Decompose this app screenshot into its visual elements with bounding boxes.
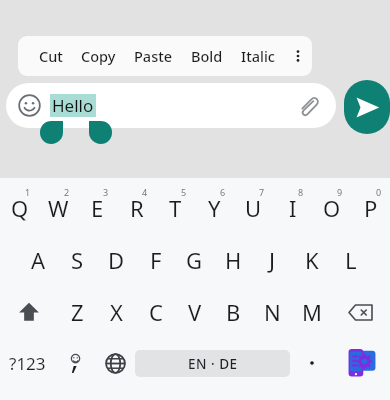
button[interactable]: L <box>331 234 370 286</box>
staticText: Paste <box>134 46 173 66</box>
staticText: L <box>345 245 357 275</box>
staticText: 4 <box>142 186 148 198</box>
staticText: V <box>188 297 202 327</box>
button[interactable]: F <box>136 234 175 286</box>
button[interactable]: Selection start handle <box>40 121 63 144</box>
staticText: Q <box>11 193 29 223</box>
button[interactable]: P <box>351 182 390 234</box>
button[interactable]: O <box>312 182 351 234</box>
staticText: Italic <box>241 46 275 66</box>
staticText: Z <box>71 297 84 327</box>
button[interactable]: Paste <box>134 36 173 76</box>
button[interactable]: C <box>136 286 175 338</box>
button[interactable]: Y <box>195 182 234 234</box>
button[interactable]: B <box>214 286 253 338</box>
button[interactable]: ?123 <box>0 338 55 388</box>
button[interactable]: W <box>39 182 78 234</box>
staticText: Hello <box>52 94 94 117</box>
staticText: 1 <box>25 186 31 198</box>
button[interactable]: Bold <box>191 36 223 76</box>
staticText: P <box>364 193 378 223</box>
button[interactable]: J <box>253 234 292 286</box>
staticText: Bold <box>191 46 223 66</box>
button[interactable]: More options <box>284 36 312 76</box>
staticText: 3 <box>103 186 109 198</box>
button[interactable]: Copy <box>81 36 116 76</box>
staticText: N <box>264 297 281 327</box>
button[interactable]: K <box>292 234 331 286</box>
staticText: 7 <box>259 186 265 198</box>
button[interactable]: N <box>253 286 292 338</box>
button[interactable]: V <box>175 286 214 338</box>
button[interactable]: Emoji <box>17 93 42 118</box>
staticText: U <box>245 193 262 223</box>
button[interactable]: Shift <box>0 286 58 338</box>
button[interactable]: App shortcut <box>334 338 390 388</box>
button[interactable]: Attach file <box>295 93 321 119</box>
staticText: G <box>186 245 203 275</box>
button[interactable]: M <box>292 286 331 338</box>
staticText: J <box>269 245 276 275</box>
staticText: 0 <box>376 186 382 198</box>
button[interactable]: I <box>273 182 312 234</box>
staticText: O <box>323 193 341 223</box>
staticText: C <box>149 297 163 327</box>
button[interactable]: Italic <box>241 36 275 76</box>
staticText: R <box>130 193 144 223</box>
button[interactable]: Emoji <box>6 83 336 128</box>
staticText: Y <box>208 193 221 223</box>
staticText: B <box>226 297 241 327</box>
button[interactable]: Selection end handle <box>89 121 112 144</box>
staticText: S <box>71 245 84 275</box>
button[interactable]: Z <box>58 286 97 338</box>
button[interactable]: Period <box>290 338 334 388</box>
staticText: ?123 <box>9 352 46 375</box>
button[interactable]: EN · DE <box>135 350 290 377</box>
staticText: K <box>305 245 319 275</box>
staticText: H <box>225 245 242 275</box>
button[interactable]: U <box>234 182 273 234</box>
staticText: 8 <box>298 186 304 198</box>
button[interactable]: Send <box>344 80 390 134</box>
staticText: A <box>31 245 46 275</box>
staticText: F <box>150 245 162 275</box>
staticText: T <box>169 193 182 223</box>
staticText: 2 <box>64 186 70 198</box>
button[interactable]: Change language <box>95 338 135 388</box>
button[interactable]: S <box>58 234 97 286</box>
button[interactable]: Comma and emoji <box>55 338 95 388</box>
staticText: W <box>48 193 69 223</box>
button[interactable]: A <box>19 234 58 286</box>
staticText: E <box>91 193 104 223</box>
button[interactable]: R <box>117 182 156 234</box>
button[interactable]: Backspace <box>331 286 390 338</box>
staticText: Cut <box>39 46 63 66</box>
button[interactable]: Q <box>0 182 39 234</box>
button[interactable]: D <box>97 234 136 286</box>
button[interactable]: Cut <box>39 36 63 76</box>
staticText: 6 <box>220 186 226 198</box>
staticText: 5 <box>181 186 187 198</box>
button[interactable]: E <box>78 182 117 234</box>
staticText: EN · DE <box>188 355 238 373</box>
staticText: X <box>110 297 123 327</box>
staticText: D <box>108 245 125 275</box>
staticText: Copy <box>81 46 116 66</box>
button[interactable]: X <box>97 286 136 338</box>
button[interactable]: T <box>156 182 195 234</box>
staticText: M <box>302 297 322 327</box>
button[interactable]: H <box>214 234 253 286</box>
staticText: 9 <box>337 186 343 198</box>
staticText: I <box>289 193 297 223</box>
button[interactable]: G <box>175 234 214 286</box>
